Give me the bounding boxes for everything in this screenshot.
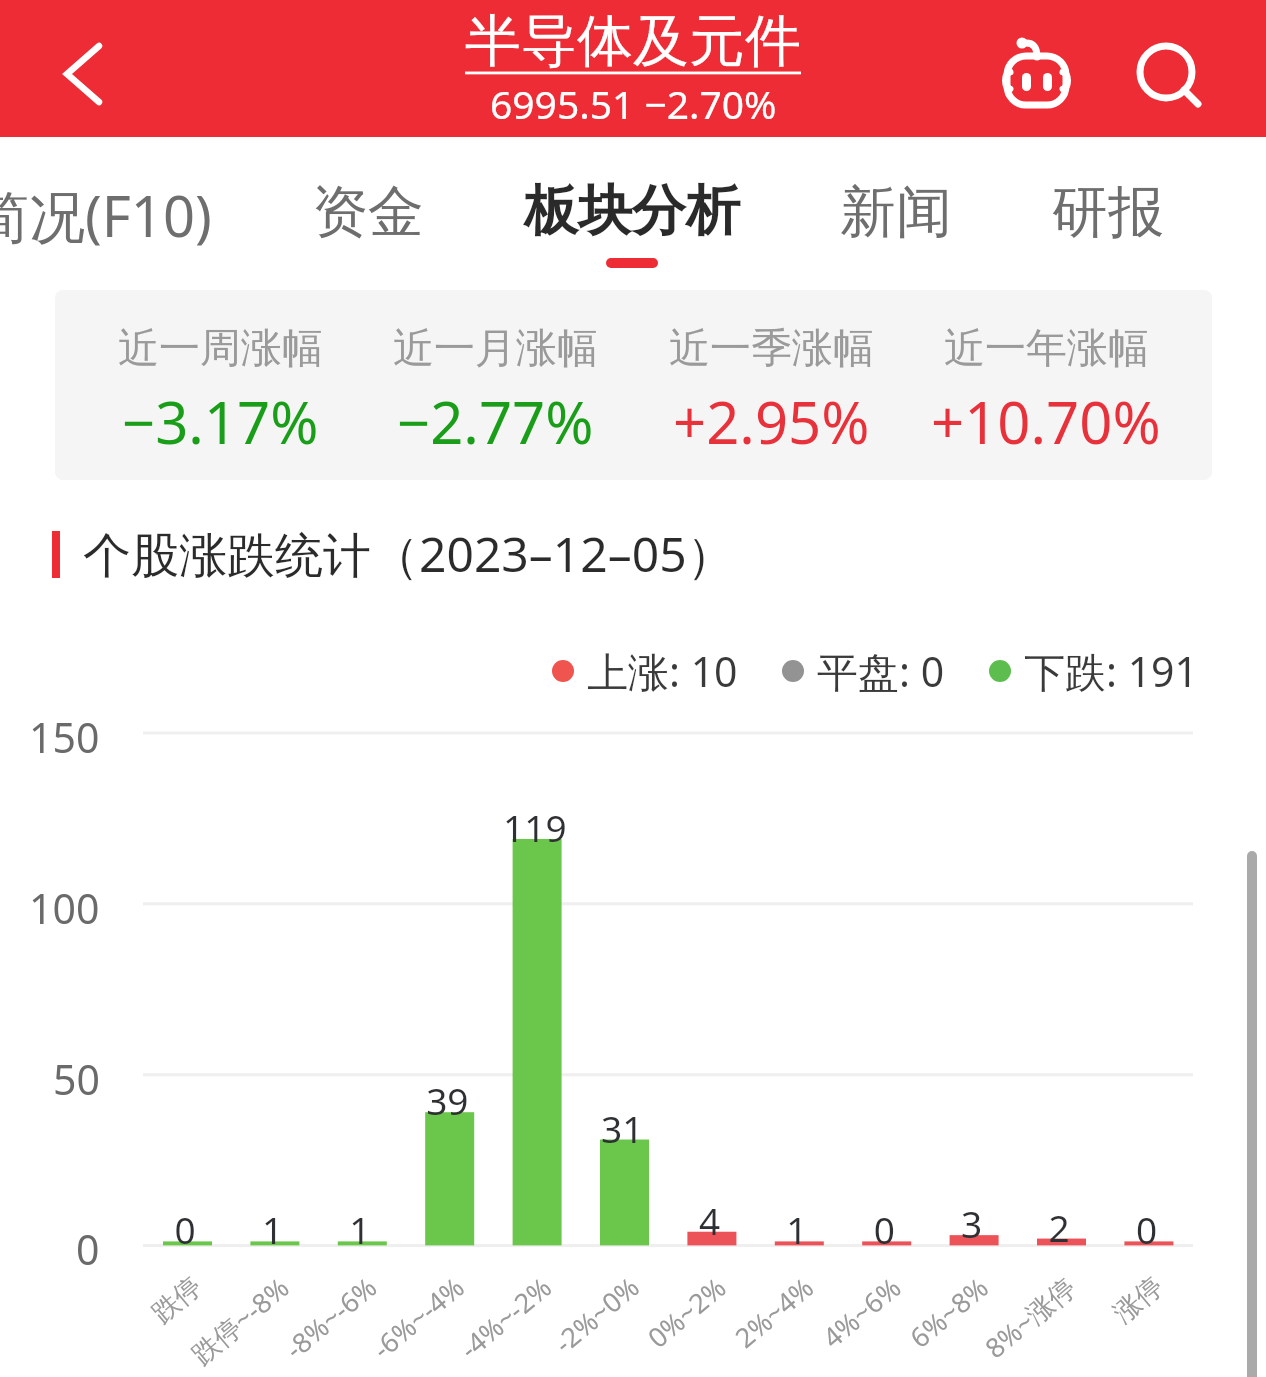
button[interactable]: 新闻 bbox=[840, 137, 952, 282]
staticText: 简况(F10) bbox=[0, 177, 212, 253]
button[interactable]: 资金 bbox=[312, 137, 424, 282]
staticText: −3.17% bbox=[122, 382, 319, 461]
staticText: 近一月涨幅 bbox=[393, 323, 598, 375]
staticText: 个股涨跌统计（2023–12–05） bbox=[83, 521, 735, 587]
staticText: 近一季涨幅 bbox=[669, 323, 874, 375]
button[interactable]: 研报 bbox=[1052, 137, 1164, 282]
staticText: 新闻 bbox=[840, 177, 952, 248]
button[interactable]: 简况(F10) bbox=[0, 137, 212, 282]
staticText: 板块分析 bbox=[524, 177, 740, 245]
button[interactable]: AI assistant bbox=[990, 30, 1082, 116]
staticText: 平盘: 0 bbox=[817, 643, 945, 699]
staticText: 近一周涨幅 bbox=[118, 323, 323, 375]
button[interactable]: 板块分析 bbox=[524, 137, 740, 282]
staticText: 上涨: 10 bbox=[587, 643, 738, 699]
staticText: 近一年涨幅 bbox=[944, 323, 1149, 375]
staticText: 资金 bbox=[312, 177, 424, 248]
staticText: 半导体及元件 bbox=[465, 6, 801, 77]
staticText: +2.95% bbox=[673, 382, 870, 461]
button[interactable]: Back bbox=[38, 24, 128, 114]
staticText: 研报 bbox=[1052, 177, 1164, 248]
staticText: −2.77% bbox=[397, 382, 594, 461]
staticText: 下跌: 191 bbox=[1024, 643, 1199, 699]
staticText: 6995.51 −2.70% bbox=[490, 77, 777, 130]
button[interactable]: Search bbox=[1120, 30, 1212, 116]
staticText: +10.70% bbox=[931, 382, 1161, 461]
